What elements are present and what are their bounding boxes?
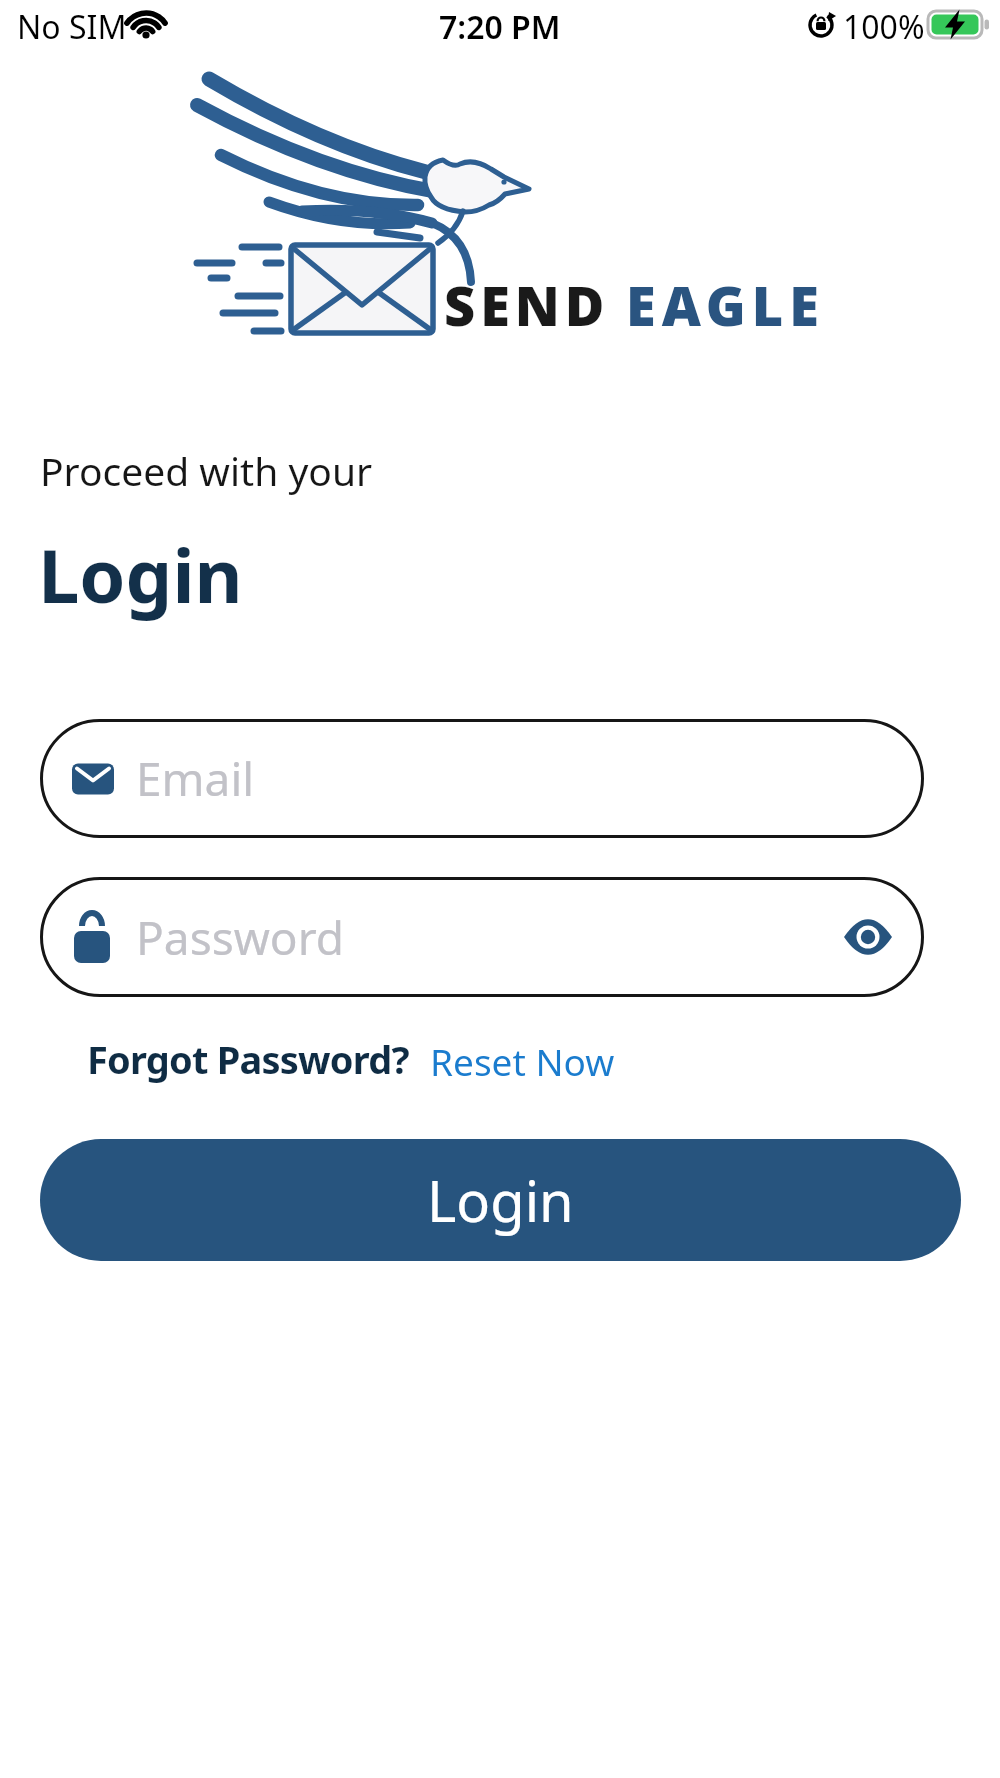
button[interactable]: Password bbox=[40, 877, 924, 997]
staticText: SEND bbox=[444, 268, 610, 342]
staticText: Password bbox=[136, 906, 345, 969]
staticText: Login bbox=[427, 1162, 574, 1238]
button[interactable]: Login bbox=[40, 1139, 961, 1261]
staticText: EAGLE bbox=[626, 268, 825, 342]
staticText: 100% bbox=[843, 5, 925, 49]
button[interactable]: Forgot Password? bbox=[87, 1033, 409, 1085]
staticText: No SIM bbox=[17, 5, 127, 49]
staticText: Email bbox=[136, 747, 255, 810]
staticText: Login bbox=[38, 524, 243, 625]
staticText: 7:20 PM bbox=[439, 5, 561, 49]
button[interactable]: Email bbox=[40, 719, 924, 838]
button[interactable] bbox=[844, 920, 892, 954]
button[interactable]: Reset Now bbox=[430, 1036, 615, 1086]
staticText: Proceed with your bbox=[40, 444, 373, 497]
